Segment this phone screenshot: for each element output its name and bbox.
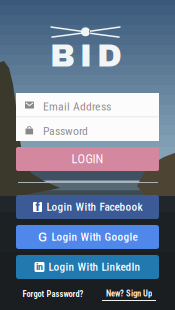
staticText: Email Address <box>43 99 111 113</box>
staticText: Login With LinkedIn <box>48 260 140 274</box>
button[interactable]: G <box>16 225 159 249</box>
staticText: BID <box>50 38 122 73</box>
button[interactable]: LOGIN <box>16 147 159 171</box>
button[interactable]: f <box>16 195 159 219</box>
staticText: in <box>36 262 43 272</box>
staticText: New? Sign Up <box>106 288 152 298</box>
button[interactable]: New? Sign Up <box>102 288 156 301</box>
staticText: Login With Facebook <box>46 200 142 214</box>
staticText: Password <box>43 124 88 138</box>
staticText: Login With Google <box>51 230 137 244</box>
staticText: G <box>38 229 47 245</box>
button[interactable]: in <box>16 255 159 279</box>
staticText: f <box>35 200 39 214</box>
staticText: Forgot Password? <box>22 289 83 299</box>
staticText: LOGIN <box>71 152 103 166</box>
button[interactable]: Forgot Password? <box>23 288 83 300</box>
